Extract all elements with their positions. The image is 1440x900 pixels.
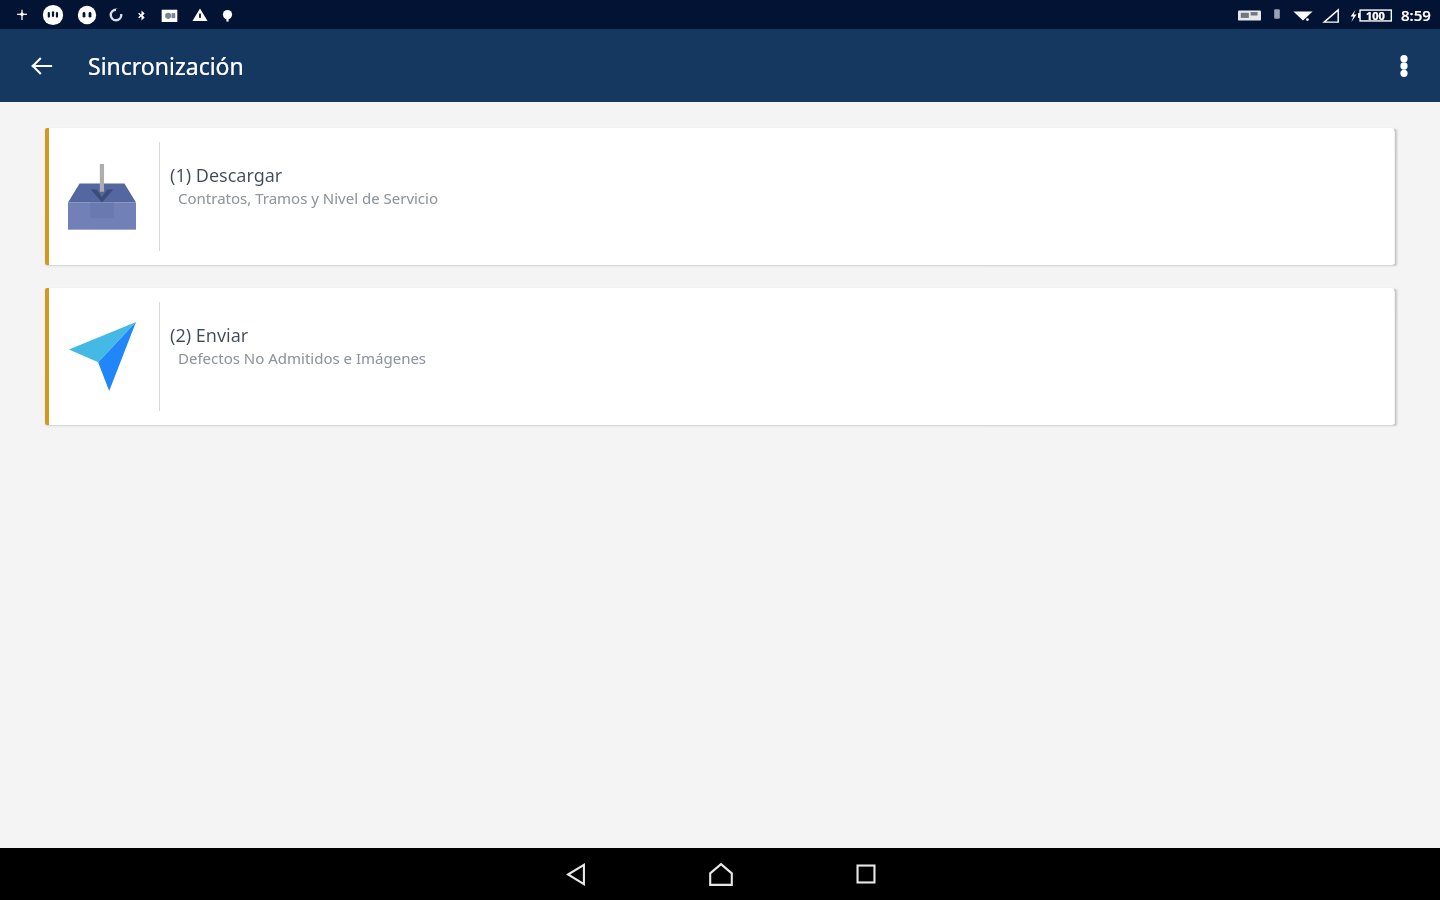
staticText: Contratos, Tramos y Nivel de Servicio xyxy=(178,188,439,208)
staticText: Sincronización xyxy=(88,50,244,81)
staticText: (2) Enviar xyxy=(170,323,249,348)
button[interactable]: Recents xyxy=(793,848,938,900)
button[interactable]: (1) Descargar xyxy=(45,128,1394,265)
button[interactable]: Back xyxy=(22,46,62,86)
button[interactable]: Back xyxy=(503,848,648,900)
button[interactable]: (2) Enviar xyxy=(45,288,1394,425)
button[interactable]: More options xyxy=(1384,46,1424,86)
button[interactable]: Home xyxy=(648,848,793,900)
staticText: 8:59 xyxy=(1401,5,1431,25)
staticText: 100 xyxy=(1366,8,1385,23)
staticText: (1) Descargar xyxy=(170,163,283,188)
staticText: Defectos No Admitidos e Imágenes xyxy=(178,348,427,368)
